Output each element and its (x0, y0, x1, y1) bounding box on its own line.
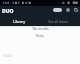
staticText: Retry (36, 34, 44, 38)
button[interactable]: Retry (35, 34, 45, 38)
staticText: Library (13, 19, 26, 24)
button[interactable]: Bookmarks (66, 8, 70, 12)
staticText: See all items (48, 19, 68, 24)
button[interactable]: Library (13, 19, 26, 24)
button[interactable]: Account switch (53, 8, 62, 12)
staticText: No results (32, 26, 49, 31)
button[interactable]: See all items (48, 19, 68, 24)
button[interactable]: Search (74, 8, 78, 12)
staticText: DUO (2, 8, 14, 15)
staticText: v1.0.3 (3, 54, 12, 58)
